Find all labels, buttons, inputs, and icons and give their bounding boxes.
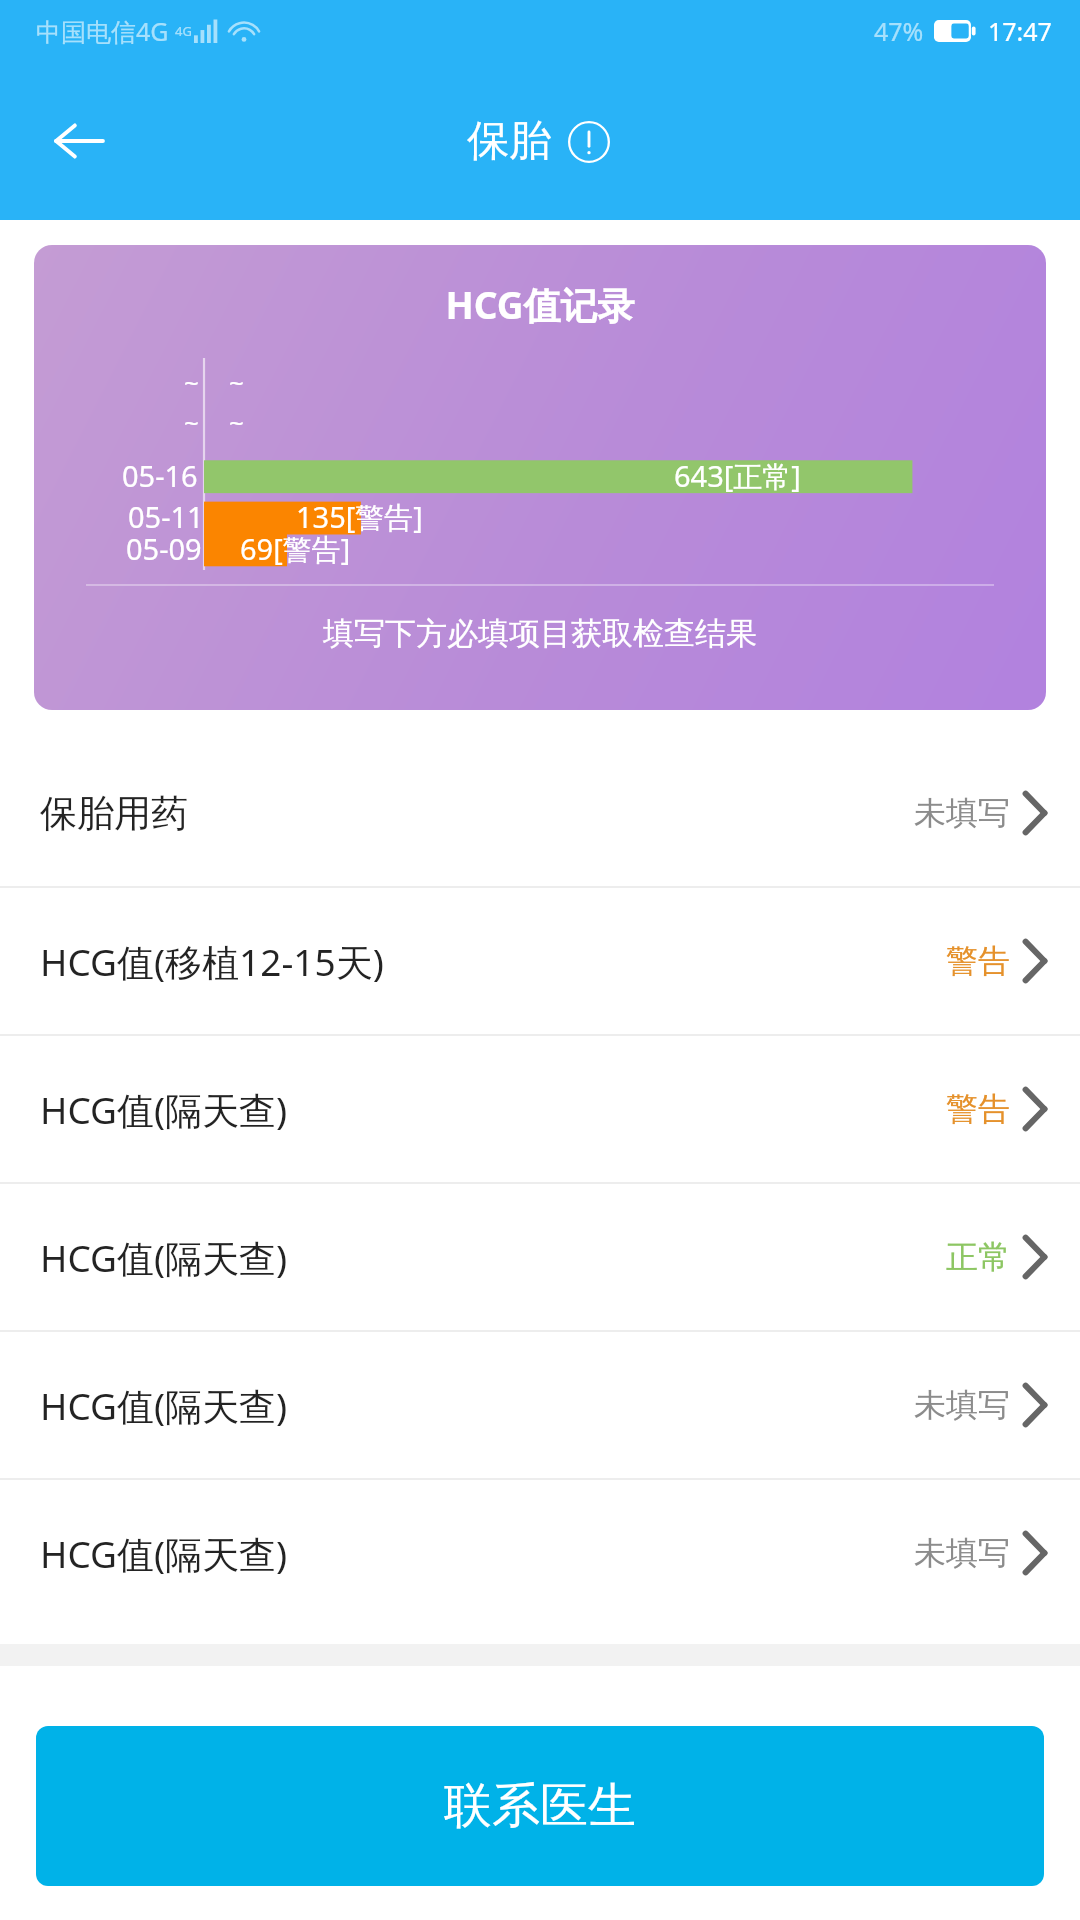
staticText: ~: [184, 404, 199, 439]
staticText: HCG值记录: [34, 279, 1046, 330]
button[interactable]: Info: [565, 118, 613, 166]
button[interactable]: HCG值(隔天查): [0, 1184, 1080, 1330]
staticText: HCG值(隔天查): [40, 1380, 288, 1431]
staticText: 警告: [946, 1089, 1010, 1129]
staticText: ~: [184, 364, 199, 399]
staticText: 联系医生: [444, 1776, 636, 1836]
staticText: 保胎用药: [40, 790, 188, 837]
staticText: 643[正常]: [674, 456, 801, 496]
staticText: 中国电信4G: [36, 14, 169, 48]
button[interactable]: Back: [34, 96, 124, 186]
staticText: ~: [229, 404, 244, 439]
staticText: 05-16: [122, 456, 198, 495]
staticText: 17:47: [988, 14, 1052, 48]
staticText: 未填写: [914, 793, 1010, 833]
staticText: ~: [229, 364, 244, 399]
staticText: 填写下方必填项目获取检查结果: [34, 614, 1046, 653]
button[interactable]: 联系医生: [36, 1726, 1044, 1886]
staticText: HCG值(隔天查): [40, 1232, 288, 1283]
staticText: 4G: [175, 22, 192, 40]
staticText: 47%: [874, 14, 924, 48]
button[interactable]: HCG值(隔天查): [0, 1480, 1080, 1626]
staticText: HCG值(移植12-15天): [40, 936, 384, 987]
staticText: 135[警告]: [296, 497, 423, 537]
staticText: HCG值(隔天查): [40, 1528, 288, 1579]
button[interactable]: HCG值记录: [34, 245, 1046, 710]
staticText: 未填写: [914, 1533, 1010, 1573]
button[interactable]: 保胎用药: [0, 740, 1080, 886]
button[interactable]: HCG值(移植12-15天): [0, 888, 1080, 1034]
staticText: 正常: [946, 1237, 1010, 1277]
staticText: 警告: [946, 941, 1010, 981]
staticText: HCG值(隔天查): [40, 1084, 288, 1135]
button[interactable]: HCG值(隔天查): [0, 1036, 1080, 1182]
staticText: 05-11: [128, 497, 204, 536]
staticText: 未填写: [914, 1385, 1010, 1425]
button[interactable]: HCG值(隔天查): [0, 1332, 1080, 1478]
staticText: 保胎: [467, 115, 551, 168]
staticText: 69[警告]: [240, 529, 351, 569]
staticText: 05-09: [126, 529, 202, 568]
